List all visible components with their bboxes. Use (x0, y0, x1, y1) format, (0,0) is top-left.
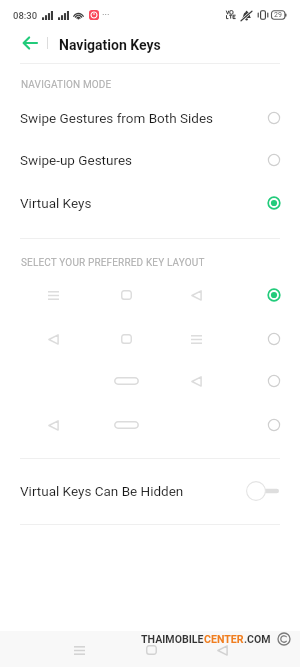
button[interactable]: Swipe-up Gestures (0, 139, 300, 181)
button[interactable]: Key layout option 1 (0, 274, 300, 316)
button[interactable]: Key layout option 3 (0, 360, 300, 402)
button[interactable]: Back (198, 632, 246, 667)
staticText: Virtual Keys (20, 195, 92, 211)
button[interactable]: Virtual Keys (0, 182, 300, 224)
staticText: .COM (244, 633, 271, 645)
staticText: THAIMOBILE (141, 633, 204, 645)
staticText: CENTER (204, 633, 244, 645)
staticText: Virtual Keys Can Be Hidden (20, 483, 184, 499)
button[interactable]: Key layout option 4 (0, 404, 300, 446)
staticText: Navigation Keys (59, 37, 161, 53)
button[interactable]: Back (16, 29, 44, 56)
button[interactable]: Swipe Gestures from Both Sides (0, 97, 300, 139)
staticText: SELECT YOUR PREFERRED KEY LAYOUT (21, 257, 205, 269)
staticText: NAVIGATION MODE (21, 79, 112, 91)
staticText: Swipe-up Gestures (20, 152, 133, 168)
staticText: 29 (274, 11, 282, 19)
staticText: ··· (102, 9, 110, 20)
staticText: 08:30 (13, 10, 38, 21)
button[interactable]: Home (127, 632, 175, 667)
staticText: Swipe Gestures from Both Sides (20, 110, 214, 126)
button[interactable]: Recents (55, 632, 103, 667)
button[interactable]: Key layout option 2 (0, 318, 300, 360)
button[interactable]: Virtual Keys Can Be Hidden (0, 469, 300, 513)
